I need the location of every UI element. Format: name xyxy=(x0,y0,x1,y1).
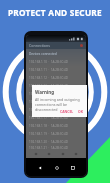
staticText: Connections xyxy=(29,43,50,48)
staticText: 192.168.1.21 · 1A:2B:3C:4D xyxy=(29,146,69,149)
button[interactable]: 192.168.1.20 · 1A:2B:3C:4D xyxy=(26,138,86,146)
button[interactable]: tab xyxy=(46,151,52,157)
button[interactable]: Recents xyxy=(69,164,76,171)
button[interactable]: 192.168.1.13 · 1A:2B:3C:4D xyxy=(26,82,86,90)
button[interactable]: tab xyxy=(33,151,39,157)
staticText: 192.168.1.11 · 1A:2B:3C:4D xyxy=(29,68,69,72)
staticText: OK xyxy=(78,109,83,114)
staticText: 192.168.1.13 · 1A:2B:3C:4D xyxy=(29,84,69,88)
staticText: 192.168.1.14 · 1A:2B:3C:4D xyxy=(29,92,69,96)
staticText: 192.168.1.20 · 1A:2B:3C:4D xyxy=(29,140,69,144)
staticText: Devices connected xyxy=(29,52,57,56)
button[interactable]: 192.168.1.21 · 1A:2B:3C:4D xyxy=(26,146,86,149)
button[interactable]: 192.168.1.18 · 1A:2B:3C:4D xyxy=(26,122,86,130)
button[interactable]: 192.168.1.12 · 1A:2B:3C:4D xyxy=(26,74,86,82)
staticText: CANCEL xyxy=(60,109,74,114)
staticText: 192.168.1.15 · 1A:2B:3C:4D xyxy=(29,100,69,104)
button[interactable]: Back xyxy=(36,164,43,171)
button[interactable]: OK xyxy=(76,109,85,114)
button[interactable]: tab xyxy=(60,151,66,157)
button[interactable]: Home xyxy=(53,164,60,171)
staticText: 192.168.1.19 · 1A:2B:3C:4D xyxy=(29,132,69,136)
button[interactable]: 192.168.1.15 · 1A:2B:3C:4D xyxy=(26,98,86,106)
button[interactable]: 192.168.1.11 · 1A:2B:3C:4D xyxy=(26,66,86,74)
button[interactable]: 192.168.1.16 · 1A:2B:3C:4D xyxy=(26,106,86,114)
button[interactable]: tab xyxy=(73,151,79,157)
button[interactable]: 192.168.1.17 · 1A:2B:3C:4D xyxy=(26,114,86,122)
staticText: Warning xyxy=(35,89,55,95)
button[interactable]: CANCEL xyxy=(58,109,76,114)
staticText: 192.168.1.16 · 1A:2B:3C:4D xyxy=(29,108,69,112)
staticText: All incoming and outgoing connections wi… xyxy=(35,97,84,112)
staticText: 192.168.1.18 · 1A:2B:3C:4D xyxy=(29,124,69,128)
button[interactable]: 192.168.1.19 · 1A:2B:3C:4D xyxy=(26,130,86,138)
staticText: 192.168.1.10 · 1A:2B:3C:4D xyxy=(29,60,69,64)
staticText: PROTECT AND SECURE xyxy=(8,7,102,18)
button[interactable]: 192.168.1.14 · 1A:2B:3C:4D xyxy=(26,90,86,98)
staticText: 192.168.1.17 · 1A:2B:3C:4D xyxy=(29,116,69,120)
staticText: 192.168.1.12 · 1A:2B:3C:4D xyxy=(29,76,69,80)
button[interactable]: 192.168.1.10 · 1A:2B:3C:4D xyxy=(26,58,86,66)
